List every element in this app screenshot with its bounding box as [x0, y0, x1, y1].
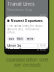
staticText: over live results — [13, 63, 40, 68]
button[interactable]: Union Sq — [5, 43, 48, 48]
staticText: Expandable bottom sheet — [6, 57, 48, 62]
staticText: 4:58 — [39, 18, 46, 22]
staticText: 4:12 — [40, 14, 46, 17]
staticText: Portland — [7, 14, 20, 17]
staticText: Live arrival times for stops — [7, 24, 42, 28]
staticText: Seattle — [7, 18, 18, 22]
button[interactable]: Seattle — [7, 18, 48, 22]
staticText: Rail — [17, 37, 23, 40]
staticText: 6 min — [37, 48, 46, 52]
staticText: Transit Lines — [7, 1, 34, 7]
staticText: Union Sq — [7, 44, 21, 47]
button[interactable]: Rail — [16, 37, 24, 41]
button[interactable]: Ferry — [25, 37, 35, 41]
staticText: Ferry — [27, 37, 34, 40]
staticText: 2 min — [37, 44, 46, 47]
staticText: Market St — [7, 48, 22, 52]
staticText: around you, refreshed often. — [7, 28, 39, 34]
staticText: Nearest Departures — [11, 19, 43, 23]
button[interactable]: Bus — [7, 37, 15, 41]
staticText: Downtown loop — [7, 8, 32, 12]
staticText: Bus — [8, 37, 13, 40]
button[interactable]: Portland — [7, 13, 48, 18]
button[interactable]: Market St — [5, 48, 48, 52]
